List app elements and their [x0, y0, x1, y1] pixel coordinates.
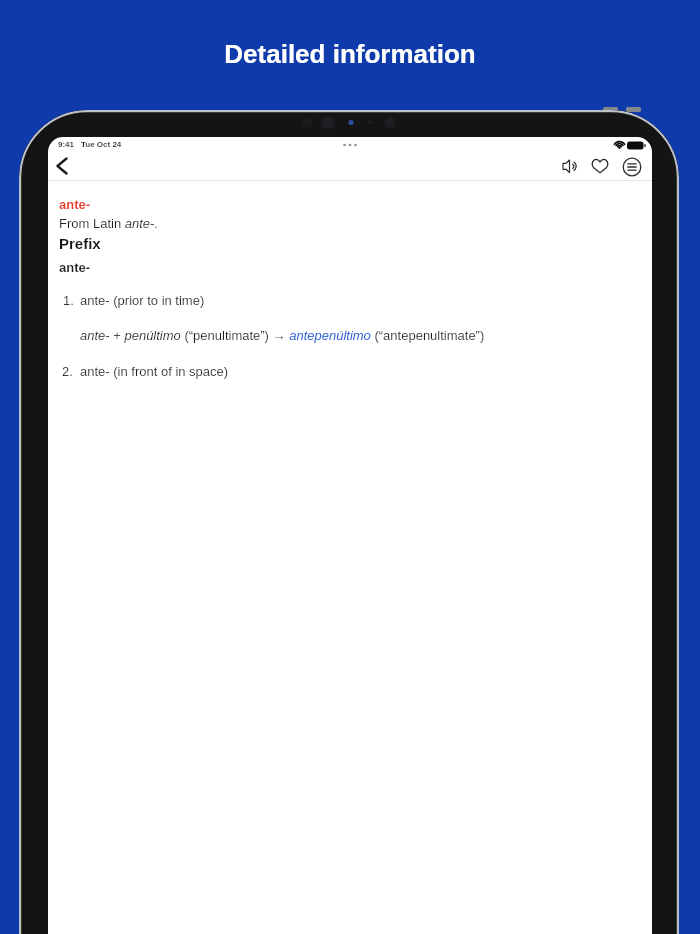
staticText: ante- (prior to in time)	[80, 293, 205, 308]
staticText: ante-	[59, 197, 91, 212]
staticText: 9:41	[58, 140, 75, 149]
staticText: Tue Oct 24	[81, 140, 122, 149]
staticText: ante-	[59, 260, 91, 275]
button[interactable]	[587, 154, 613, 180]
staticText: Prefix	[59, 235, 101, 252]
staticText: ante- (in front of in space)	[80, 364, 229, 379]
staticText: 2.	[62, 364, 73, 379]
button[interactable]	[52, 154, 74, 178]
staticText: Detailed information	[0, 39, 700, 68]
staticText: From Latin ante-.	[59, 216, 158, 231]
button[interactable]	[619, 154, 645, 180]
button[interactable]	[558, 155, 584, 181]
staticText: ante- + penúltimo (“penultimate”) → ante…	[80, 328, 485, 343]
staticText: 1.	[63, 293, 74, 308]
